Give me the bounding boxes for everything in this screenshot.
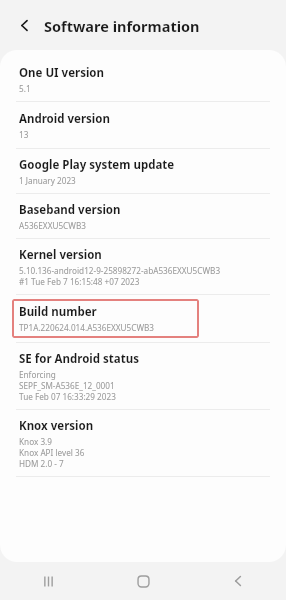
button[interactable]: Build number <box>12 299 199 338</box>
staticText: Tue Feb 07 16:33:29 2023 <box>19 391 116 402</box>
button[interactable]: Recent apps <box>0 562 96 600</box>
button[interactable]: Google Play system update <box>0 149 286 193</box>
staticText: Android version <box>19 111 110 127</box>
button[interactable]: Kernel version <box>0 239 286 294</box>
staticText: Knox version <box>19 418 94 434</box>
staticText: SE for Android status <box>19 351 139 367</box>
staticText: 13 <box>19 129 29 140</box>
staticText: 1 January 2023 <box>19 175 76 186</box>
staticText: SEPF_SM-A536E_12_0001 <box>19 380 115 391</box>
staticText: Knox 3.9 <box>19 436 52 447</box>
staticText: Kernel version <box>19 247 102 263</box>
button[interactable]: SE for Android status <box>0 343 286 409</box>
staticText: #1 Tue Feb 7 16:15:48 +07 2023 <box>19 276 140 287</box>
staticText: Enforcing <box>19 369 56 380</box>
button[interactable]: Navigate up <box>10 10 40 40</box>
staticText: Knox API level 36 <box>19 447 85 458</box>
button[interactable]: Android version <box>0 102 286 148</box>
staticText: Software information <box>44 16 200 36</box>
staticText: Build number <box>19 304 97 320</box>
staticText: HDM 2.0 - 7 <box>19 458 64 469</box>
staticText: One UI version <box>19 65 105 81</box>
staticText: A536EXXU5CWB3 <box>19 220 86 231</box>
staticText: 5.1 <box>19 83 31 94</box>
button[interactable]: Home <box>96 562 191 600</box>
button[interactable]: Knox version <box>0 410 286 476</box>
button[interactable]: Baseband version <box>0 194 286 238</box>
button[interactable]: Back <box>191 562 286 600</box>
button[interactable]: One UI version <box>0 58 286 101</box>
staticText: Baseband version <box>19 202 121 218</box>
staticText: Google Play system update <box>19 157 175 173</box>
staticText: TP1A.220624.014.A536EXXU5CWB3 <box>19 322 155 333</box>
staticText: 5.10.136-android12-9-25898272-abA536EXXU… <box>19 265 221 276</box>
